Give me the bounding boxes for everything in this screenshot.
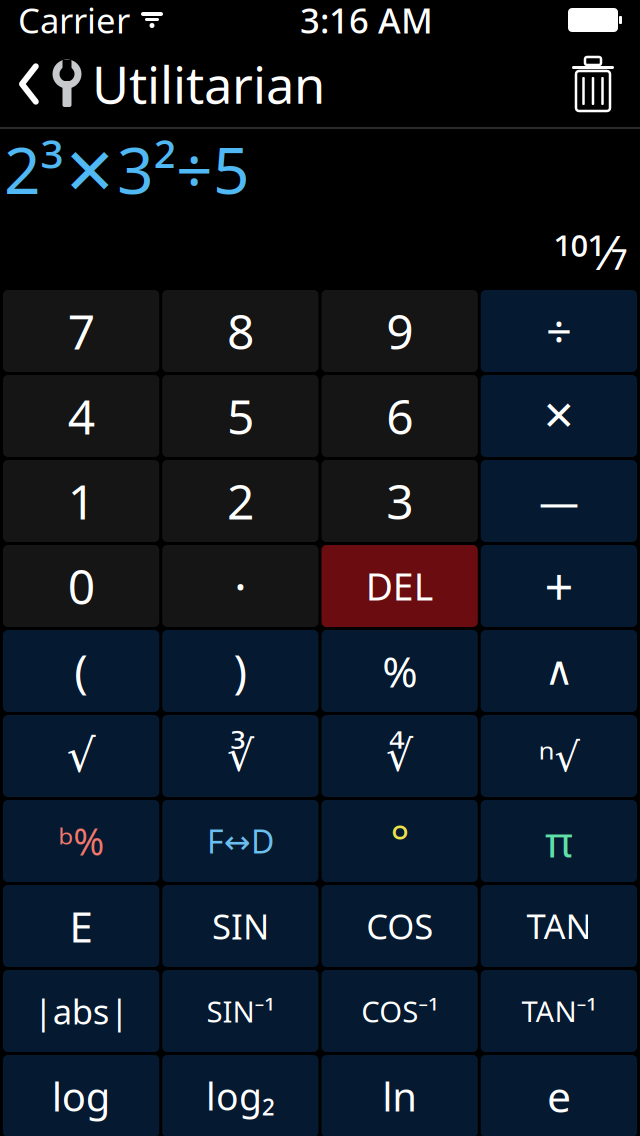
staticText: ᵇ% (58, 816, 104, 866)
staticText: ∜ (386, 732, 413, 780)
staticText: ) (233, 641, 247, 701)
staticText: π (545, 813, 573, 869)
staticText: 9 (386, 299, 413, 363)
button[interactable]: Fourth root (321, 715, 478, 797)
button[interactable]: COS (321, 885, 478, 967)
button[interactable]: 9 (321, 290, 478, 372)
button[interactable]: Fraction decimal toggle (162, 800, 318, 882)
button[interactable]: Close parenthesis (162, 630, 318, 712)
button[interactable]: Euler's number (481, 1055, 637, 1136)
staticText: % (382, 643, 417, 699)
button[interactable]: Arc tangent (481, 970, 637, 1052)
staticText: ÷ (546, 301, 572, 361)
button[interactable]: Percent (321, 630, 478, 712)
button[interactable]: log (3, 1055, 159, 1136)
staticText: ° (390, 811, 409, 871)
staticText: log₂ (206, 1071, 275, 1121)
staticText: COS⁻¹ (361, 991, 438, 1030)
staticText: 2 (227, 469, 254, 533)
button[interactable]: Back to Utilitarian (0, 41, 339, 127)
staticText: 6 (386, 384, 413, 448)
staticText: ⁿ√ (538, 729, 579, 782)
button[interactable]: Mixed fraction (3, 800, 159, 882)
staticText: 3:16 AM (300, 0, 433, 43)
staticText: F↔D (207, 820, 274, 862)
button[interactable]: 6 (321, 375, 478, 457)
button[interactable]: Degrees (321, 800, 478, 882)
staticText: 2³✕3²÷5 (4, 127, 250, 212)
staticText: ∧ (544, 648, 573, 694)
staticText: ( (74, 641, 88, 701)
staticText: — (539, 474, 579, 527)
button[interactable]: 8 (162, 290, 318, 372)
staticText: TAN (526, 903, 591, 949)
staticText: √ (67, 730, 96, 782)
staticText: · (234, 554, 247, 618)
staticText: log (52, 1069, 111, 1122)
button[interactable]: Decimal point (162, 545, 318, 627)
button[interactable]: E (3, 885, 159, 967)
button[interactable]: 0 (3, 545, 159, 627)
staticText: SIN (212, 903, 269, 949)
button[interactable]: Cube root (162, 715, 318, 797)
staticText: ∛ (227, 732, 254, 780)
button[interactable]: Nth root (481, 715, 637, 797)
button[interactable]: 4 (3, 375, 159, 457)
button[interactable]: Arc cosine (321, 970, 478, 1052)
button[interactable]: 3 (321, 460, 478, 542)
staticText: 101⁄7 (554, 220, 628, 283)
staticText: 5 (227, 384, 254, 448)
button[interactable]: Divide (481, 290, 637, 372)
staticText: 7 (68, 299, 95, 363)
button[interactable]: Natural log (321, 1055, 478, 1136)
staticText: e (547, 1068, 571, 1124)
staticText: 4 (68, 384, 95, 448)
button[interactable]: Clear (544, 41, 640, 127)
button[interactable]: Open parenthesis (3, 630, 159, 712)
staticText: + (544, 552, 573, 620)
button[interactable]: TAN (481, 885, 637, 967)
staticText: E (69, 898, 93, 954)
button[interactable]: Power (481, 630, 637, 712)
button[interactable]: SIN (162, 885, 318, 967)
button[interactable]: 7 (3, 290, 159, 372)
button[interactable]: Delete (321, 545, 478, 627)
button[interactable]: Pi (481, 800, 637, 882)
staticText: Carrier (18, 0, 130, 43)
staticText: ln (382, 1069, 417, 1122)
staticText: COS (366, 903, 433, 949)
staticText: DEL (366, 561, 434, 611)
button[interactable]: Minus (481, 460, 637, 542)
button[interactable]: Square root (3, 715, 159, 797)
button[interactable]: Absolute value (3, 970, 159, 1052)
staticText: TAN⁻¹ (521, 991, 596, 1030)
staticText: 8 (227, 299, 254, 363)
button[interactable]: Plus (481, 545, 637, 627)
button[interactable]: Log base 2 (162, 1055, 318, 1136)
staticText: 1 (68, 469, 95, 533)
button[interactable]: Multiply (481, 375, 637, 457)
staticText: Utilitarian (92, 50, 325, 118)
staticText: SIN⁻¹ (206, 991, 274, 1030)
button[interactable]: Arc sine (162, 970, 318, 1052)
staticText: |abs| (34, 988, 129, 1034)
staticText: 0 (68, 554, 95, 618)
button[interactable]: 5 (162, 375, 318, 457)
button[interactable]: 1 (3, 460, 159, 542)
button[interactable]: 2 (162, 460, 318, 542)
staticText: ✕ (542, 393, 576, 439)
staticText: 3 (386, 469, 413, 533)
